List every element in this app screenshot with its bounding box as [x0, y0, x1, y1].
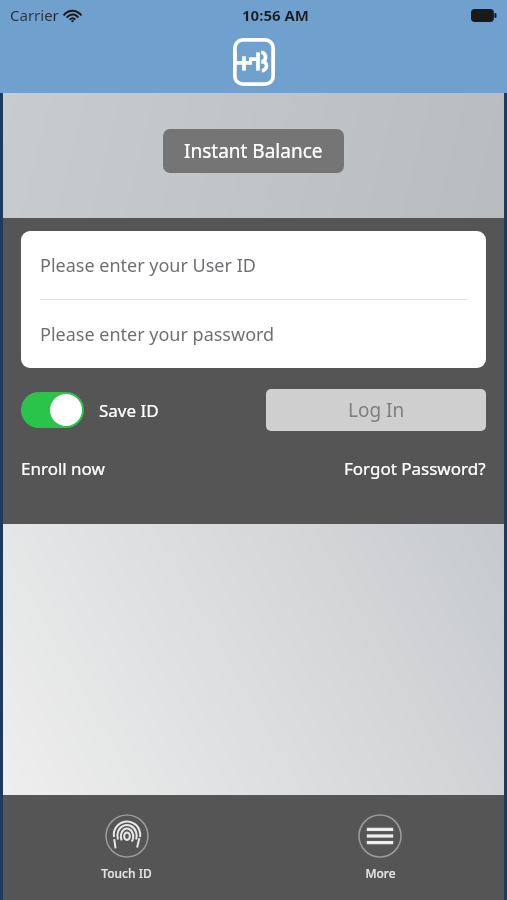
staticText: Please enter your User ID	[40, 253, 256, 278]
staticText: Touch ID	[101, 865, 152, 881]
staticText: Instant Balance	[184, 138, 323, 164]
button[interactable]: Please enter your password	[21, 300, 486, 368]
button[interactable]: Please enter your User ID	[21, 231, 486, 299]
button[interactable]: Save ID	[21, 392, 159, 428]
staticText: Enroll now	[21, 457, 105, 480]
staticText: Carrier	[10, 5, 59, 25]
staticText: Forgot Password?	[344, 457, 486, 480]
button[interactable]: More	[334, 808, 426, 887]
staticText: Log In	[348, 397, 405, 423]
staticText: 10:56 AM	[242, 5, 309, 25]
staticText: Please enter your password	[40, 322, 275, 347]
button[interactable]: Enroll now	[21, 457, 105, 480]
staticText: Save ID	[99, 399, 159, 422]
button[interactable]: Forgot Password?	[344, 457, 486, 480]
staticText: More	[365, 865, 396, 881]
button[interactable]: Instant Balance	[163, 129, 344, 173]
button[interactable]: Log In	[266, 389, 486, 431]
button[interactable]: Touch ID	[77, 808, 176, 887]
